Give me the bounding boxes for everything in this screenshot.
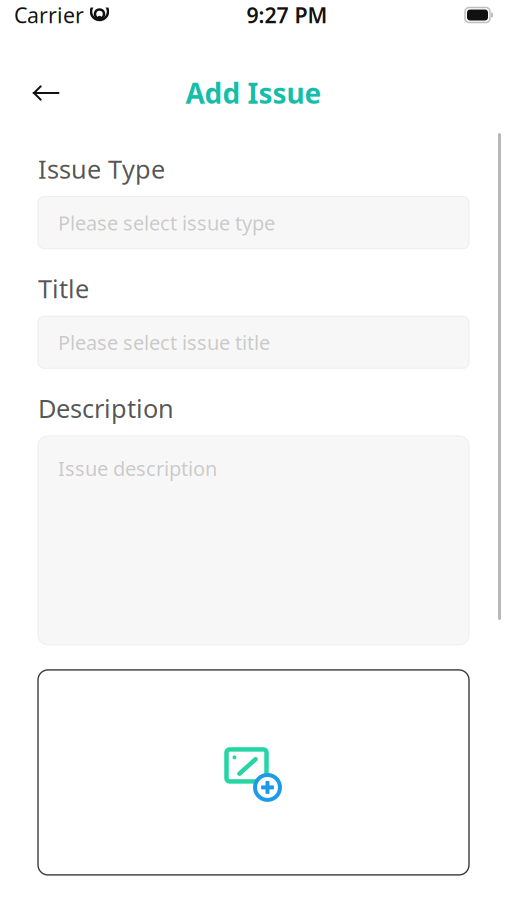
button[interactable]: Add photo bbox=[38, 670, 469, 875]
staticText: Please select issue type bbox=[58, 209, 275, 236]
staticText: Add Issue bbox=[185, 74, 321, 112]
staticText: Issue Type bbox=[38, 152, 165, 186]
staticText: 9:27 PM bbox=[246, 1, 327, 29]
staticText: Please select issue title bbox=[58, 329, 270, 356]
staticText: Title bbox=[38, 272, 89, 305]
staticText: Description bbox=[38, 391, 174, 425]
button[interactable]: Add Issue bbox=[0, 74, 507, 112]
button[interactable]: Please select issue type bbox=[38, 197, 469, 249]
staticText: Carrier bbox=[14, 1, 84, 29]
button[interactable]: Issue description bbox=[38, 436, 469, 645]
button[interactable]: Back bbox=[24, 71, 68, 115]
button[interactable]: Please select issue title bbox=[38, 316, 469, 368]
staticText: Issue description bbox=[58, 455, 217, 481]
